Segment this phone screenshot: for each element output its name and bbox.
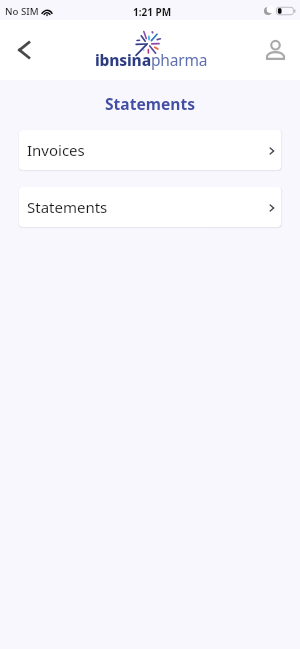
staticText: 1:21 PM — [133, 5, 172, 19]
button[interactable]: Back — [8, 34, 40, 66]
button[interactable]: Account — [261, 35, 289, 65]
staticText: Statements — [0, 93, 300, 114]
staticText: ibnsina — [95, 49, 151, 70]
button[interactable]: Invoices — [19, 130, 281, 170]
button[interactable]: Statements — [19, 187, 281, 227]
staticText: Invoices — [27, 140, 85, 160]
staticText: No SIM — [5, 5, 39, 18]
staticText: pharma — [151, 49, 208, 70]
staticText: Statements — [27, 197, 108, 217]
